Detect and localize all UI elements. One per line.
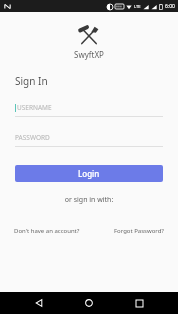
button[interactable]: USERNAME	[15, 102, 163, 113]
button[interactable]: Forgot Password?	[114, 227, 164, 235]
button[interactable]: PASSWORD	[15, 132, 163, 143]
button[interactable]: Back	[28, 292, 50, 314]
staticText: LTE	[134, 4, 141, 9]
staticText: Sign In	[15, 74, 48, 88]
button[interactable]: Recent apps	[128, 292, 150, 314]
staticText: Forgot Password?	[114, 227, 164, 235]
staticText: PASSWORD	[15, 133, 50, 142]
button[interactable]: Home	[78, 292, 100, 314]
staticText: 6:00	[165, 3, 175, 10]
button[interactable]: Don't have an account?	[14, 227, 80, 235]
button[interactable]: Login	[15, 165, 163, 182]
staticText: Don't have an account?	[14, 227, 80, 235]
staticText: or sign in with:	[0, 195, 178, 205]
other: SwyftXP logo	[79, 26, 99, 46]
staticText: SwyftXP	[74, 49, 104, 60]
staticText: Login	[78, 168, 100, 179]
staticText: USERNAME	[17, 103, 52, 112]
